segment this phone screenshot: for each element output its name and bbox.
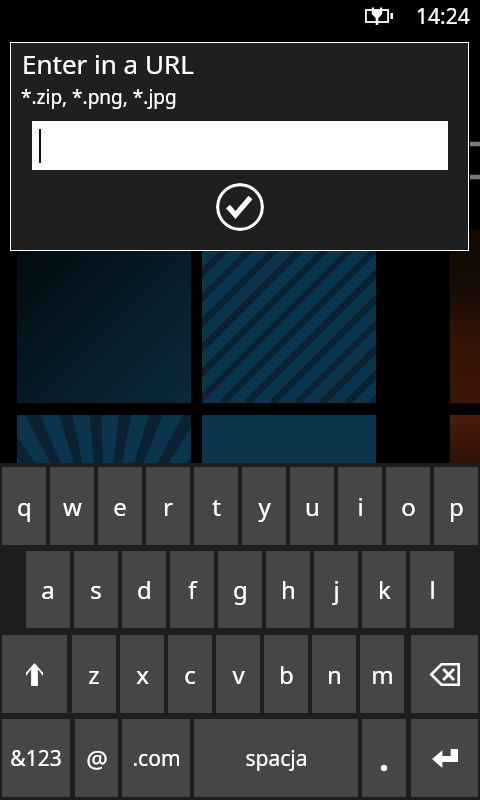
button[interactable] [32, 121, 448, 170]
staticText: j [333, 573, 340, 606]
button[interactable]: Confirm [216, 183, 264, 231]
button[interactable]: @ [75, 719, 118, 797]
staticText: l [429, 573, 436, 606]
button[interactable]: n [312, 635, 356, 713]
button[interactable]: g [218, 551, 262, 628]
button[interactable]: enter [411, 719, 478, 797]
button[interactable]: o [386, 467, 430, 545]
button[interactable]: i [338, 467, 382, 545]
staticText: d [137, 573, 152, 606]
button[interactable]: d [122, 551, 166, 628]
button[interactable]: h [266, 551, 310, 628]
button[interactable]: t [194, 467, 238, 545]
button[interactable]: .com [122, 719, 190, 797]
staticText: a [41, 573, 55, 606]
staticText: f [188, 573, 197, 606]
button[interactable]: b [264, 635, 308, 713]
staticText: 14:24 [416, 2, 470, 31]
button[interactable]: shift [2, 635, 67, 713]
button[interactable]: x [120, 635, 164, 713]
button[interactable]: s [74, 551, 118, 628]
button[interactable]: y [242, 467, 286, 545]
button[interactable]: e [98, 467, 142, 545]
staticText: k [378, 573, 391, 606]
staticText: n [327, 658, 342, 691]
button[interactable]: u [290, 467, 334, 545]
staticText: p [449, 490, 464, 523]
staticText: v [232, 658, 245, 691]
button[interactable]: v [216, 635, 260, 713]
button[interactable]: c [168, 635, 212, 713]
button[interactable]: r [146, 467, 190, 545]
staticText: x [136, 658, 149, 691]
staticText: u [305, 490, 320, 523]
staticText: Enter in a URL [22, 46, 194, 81]
staticText: t [212, 490, 221, 523]
staticText: m [371, 658, 394, 691]
staticText: y [258, 490, 271, 523]
staticText: h [281, 573, 296, 606]
staticText: b [279, 658, 294, 691]
staticText: c [184, 658, 196, 691]
staticText: w [63, 490, 82, 523]
staticText: .com [132, 744, 181, 773]
button[interactable]: l [410, 551, 454, 628]
staticText: @ [86, 742, 108, 775]
staticText: spacja [245, 744, 308, 773]
button[interactable]: p [434, 467, 478, 545]
button[interactable]: spacja [194, 719, 358, 797]
staticText: g [233, 573, 248, 606]
staticText: *.zip, *.png, *.jpg [21, 84, 177, 110]
staticText: z [88, 658, 100, 691]
button[interactable]: q [2, 467, 46, 545]
button[interactable]: w [50, 467, 94, 545]
staticText: r [163, 490, 173, 523]
staticText: o [401, 490, 416, 523]
staticText: s [90, 573, 102, 606]
staticText: &123 [10, 744, 62, 773]
button[interactable]: &123 [2, 719, 70, 797]
button[interactable]: back [411, 635, 478, 713]
staticText: q [17, 490, 32, 523]
staticText: e [113, 490, 127, 523]
button[interactable]: f [170, 551, 214, 628]
button[interactable]: k [362, 551, 406, 628]
button[interactable]: a [26, 551, 70, 628]
button[interactable]: m [360, 635, 404, 713]
button[interactable] [362, 719, 406, 797]
button[interactable]: z [72, 635, 116, 713]
button[interactable]: j [314, 551, 358, 628]
staticText: i [357, 490, 364, 523]
